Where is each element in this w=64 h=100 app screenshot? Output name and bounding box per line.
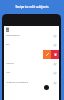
staticText: Mathematics bbox=[6, 34, 53, 37]
staticText: Swipe to edit subjects bbox=[15, 5, 49, 9]
button[interactable]: Control bbox=[4, 59, 59, 68]
button[interactable]: Mathematics bbox=[4, 31, 59, 40]
staticText: ESL bbox=[6, 43, 53, 46]
button[interactable]: ESL bbox=[4, 40, 59, 49]
button[interactable]: Edit bbox=[43, 50, 51, 59]
staticText: ACS bbox=[6, 71, 53, 74]
staticText: Artificial Intelligence bbox=[6, 81, 53, 84]
button[interactable]: Delete bbox=[51, 50, 59, 59]
button[interactable]: Artificial Intelligence bbox=[4, 78, 59, 87]
button[interactable]: Open navigation menu bbox=[5, 27, 9, 31]
staticText: Control bbox=[6, 62, 53, 65]
button[interactable]: Add subject bbox=[44, 85, 49, 90]
button[interactable]: ACS bbox=[4, 68, 59, 77]
